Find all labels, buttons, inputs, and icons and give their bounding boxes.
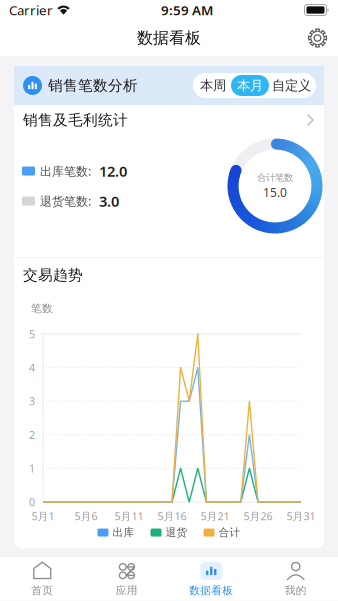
staticText: 我的 [285,584,307,597]
staticText: 首页 [31,584,53,597]
staticText: 退货 [165,526,187,539]
staticText: 交易趋势 [23,266,83,284]
staticText: 出库 [112,526,134,539]
staticText: 合计 [218,526,240,539]
staticText: 12.0 [99,161,127,181]
staticText: 1 [29,461,35,475]
staticText: 5 [29,327,35,341]
staticText: 销售笔数分析 [48,76,138,94]
staticText: 4 [29,360,35,375]
staticText: 出库笔数: [40,163,94,179]
staticText: 0 [29,495,35,509]
staticText: 笔数 [31,302,53,315]
button[interactable]: 我的 [253,556,338,600]
staticText: 销售及毛利统计 [23,111,128,129]
staticText: 5月31 [286,509,315,523]
staticText: 自定义 [272,77,311,94]
staticText: 5月26 [243,509,272,523]
staticText: 合计笔数 [257,172,293,183]
button[interactable]: 首页 [0,556,84,600]
staticText: 5月11 [114,509,143,523]
button[interactable]: 销售及毛利统计 [14,106,324,134]
staticText: 退货笔数: [40,193,94,209]
staticText: 应用 [116,584,138,597]
button[interactable]: 本周 [195,75,231,96]
staticText: Carrier [9,1,53,19]
staticText: 5月1 [31,509,54,523]
staticText: 数据看板 [137,28,201,48]
button[interactable]: 应用 [84,556,169,600]
staticText: 数据看板 [189,584,233,597]
staticText: 5月16 [157,509,186,523]
staticText: 3 [29,394,35,408]
button[interactable]: 设置 [298,20,338,55]
staticText: 本周 [200,77,226,94]
button[interactable]: 本月 [231,75,269,96]
staticText: 5月6 [74,509,97,523]
staticText: 3.0 [99,191,119,211]
staticText: 2 [29,428,35,442]
staticText: 本月 [237,77,263,94]
staticText: 9:59 AM [161,1,213,19]
button[interactable]: 数据看板 [169,556,253,600]
staticText: 5月21 [200,509,229,523]
staticText: 15.0 [263,184,287,200]
button[interactable]: 自定义 [269,75,314,96]
